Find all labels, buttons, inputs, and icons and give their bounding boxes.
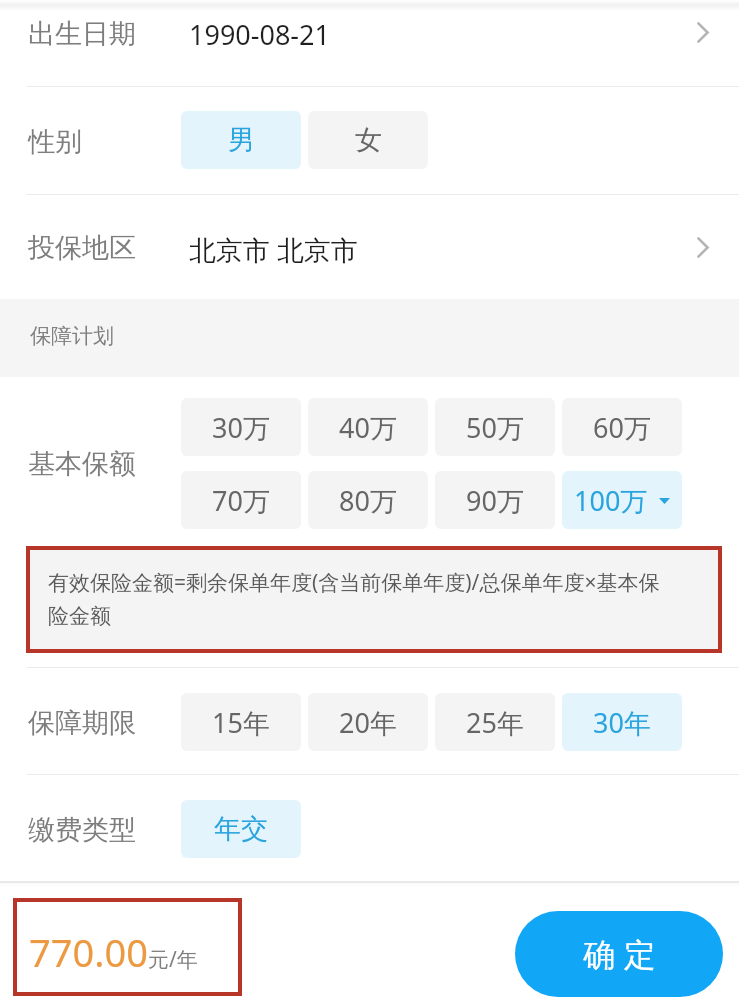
staticText: 1990-08-21 <box>189 16 330 53</box>
button[interactable]: 80万 <box>308 471 428 529</box>
staticText: 15年 <box>212 704 270 741</box>
staticText: 北京市 北京市 <box>189 231 359 268</box>
button[interactable]: 25年 <box>435 693 555 751</box>
staticText: 60万 <box>593 409 651 446</box>
staticText: 有效保险金额=剩余保单年度(含当前保单年度)/总保单年度×基本保险金额 <box>48 568 676 629</box>
staticText: 20年 <box>339 704 397 741</box>
button[interactable]: 30年 <box>562 693 682 751</box>
button[interactable]: 投保地区 <box>0 195 739 299</box>
other: Open <box>697 237 709 258</box>
button[interactable]: 15年 <box>181 693 301 751</box>
staticText: 70万 <box>212 482 270 519</box>
button[interactable]: 女 <box>308 111 428 169</box>
staticText: 25年 <box>466 704 524 741</box>
button[interactable]: 出生日期 <box>0 0 739 86</box>
staticText: 50万 <box>466 409 524 446</box>
button[interactable]: 90万 <box>435 471 555 529</box>
staticText: 80万 <box>339 482 397 519</box>
staticText: 男 <box>228 123 255 157</box>
staticText: 770.00 <box>29 926 148 978</box>
staticText: 女 <box>355 123 382 157</box>
staticText: 年交 <box>214 812 268 846</box>
button[interactable]: 20年 <box>308 693 428 751</box>
staticText: 性别 <box>28 125 82 159</box>
staticText: 出生日期 <box>28 17 136 51</box>
staticText: 投保地区 <box>28 231 136 265</box>
button[interactable]: 100万 <box>562 471 682 529</box>
staticText: 100万 <box>574 482 648 519</box>
staticText: 元/年 <box>148 945 198 974</box>
button[interactable]: 30万 <box>181 398 301 456</box>
button[interactable]: 50万 <box>435 398 555 456</box>
staticText: 缴费类型 <box>28 813 136 847</box>
staticText: 30年 <box>593 704 651 741</box>
button[interactable]: 确 定 <box>515 911 723 997</box>
staticText: 保障期限 <box>28 706 136 740</box>
staticText: 基本保额 <box>28 447 136 481</box>
other: Open <box>697 22 709 43</box>
staticText: 90万 <box>466 482 524 519</box>
staticText: 30万 <box>212 409 270 446</box>
button[interactable]: 40万 <box>308 398 428 456</box>
staticText: 保障计划 <box>30 323 114 349</box>
button[interactable]: 60万 <box>562 398 682 456</box>
button[interactable]: 70万 <box>181 471 301 529</box>
button[interactable]: 年交 <box>181 800 301 858</box>
staticText: 40万 <box>339 409 397 446</box>
staticText: 确 定 <box>583 932 656 976</box>
button[interactable]: 男 <box>181 111 301 169</box>
